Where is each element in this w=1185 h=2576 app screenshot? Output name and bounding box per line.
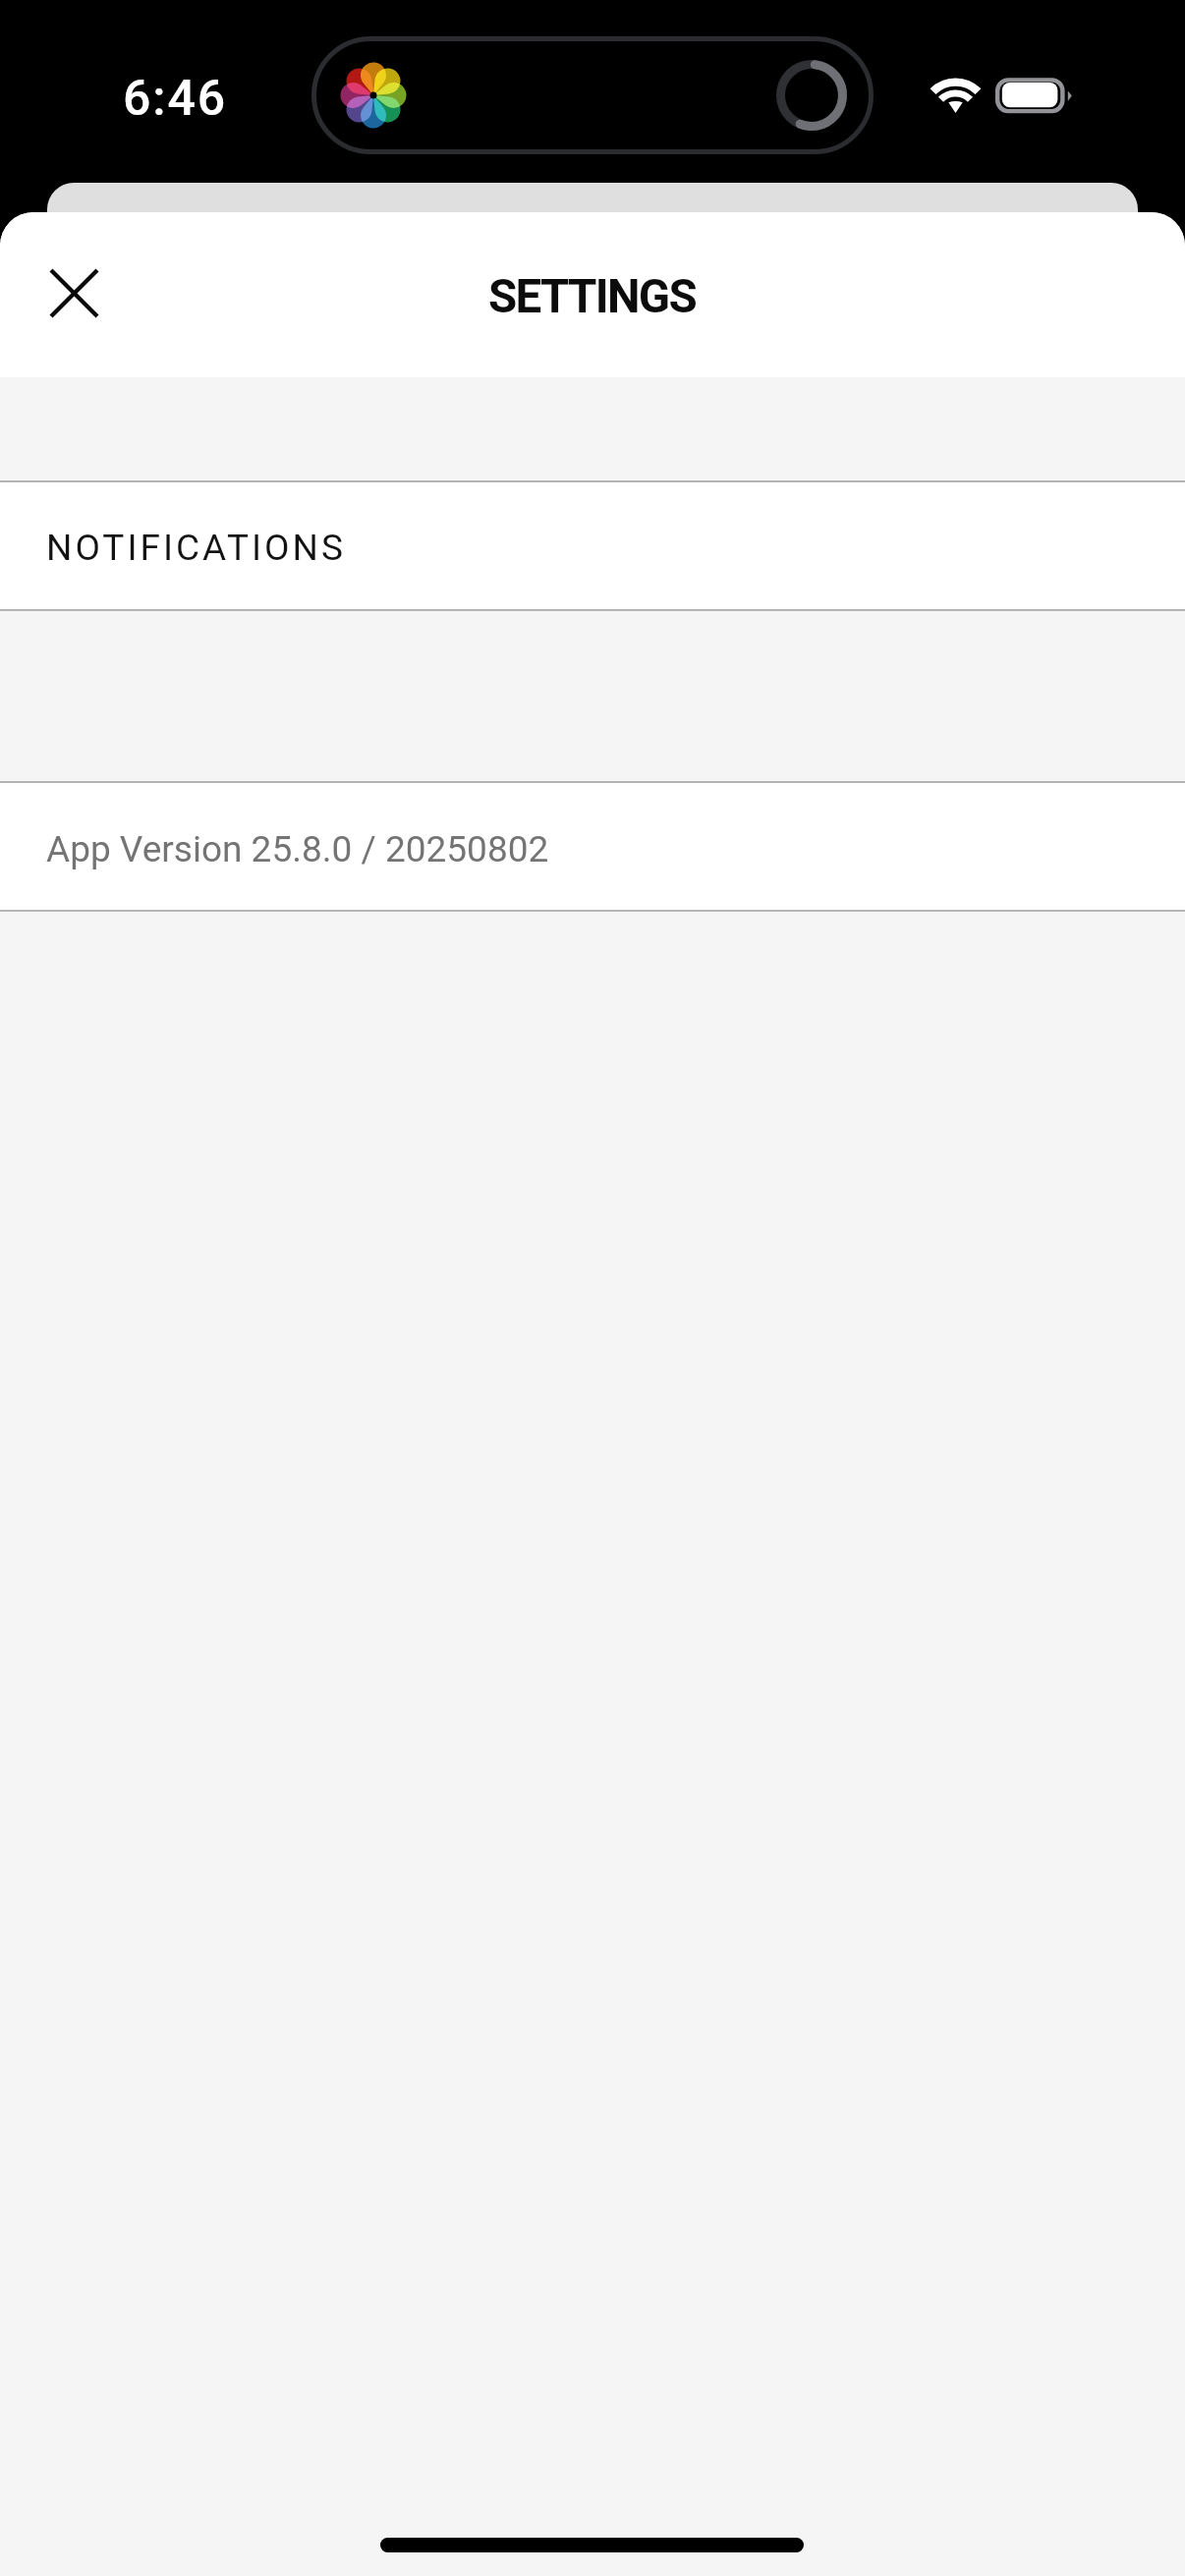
staticText: 6:46 bbox=[123, 70, 228, 128]
staticText: NOTIFICATIONS bbox=[46, 527, 346, 569]
staticText: App Version 25.8.0 / 20250802 bbox=[46, 828, 549, 870]
button[interactable]: Close bbox=[26, 245, 122, 341]
staticText: SETTINGS bbox=[488, 269, 696, 324]
button[interactable]: NOTIFICATIONS bbox=[0, 482, 1185, 609]
